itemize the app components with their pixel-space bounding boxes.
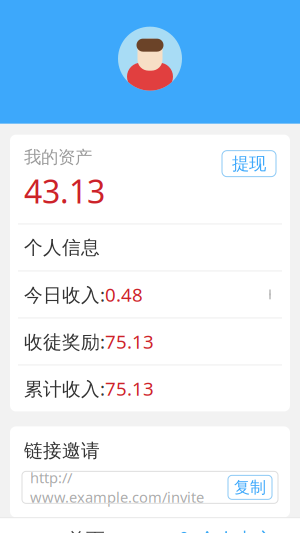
button[interactable]: 首页: [0, 518, 150, 533]
staticText: 0.48: [105, 282, 143, 307]
button[interactable]: 累计收入:: [10, 365, 290, 411]
staticText: 首页: [67, 528, 105, 533]
staticText: 个人中心: [198, 528, 274, 533]
button[interactable]: 个人中心: [150, 518, 300, 533]
staticText: http://www.example.com/invite: [30, 468, 204, 507]
staticText: 累计收入:: [24, 376, 105, 401]
staticText: 75.13: [105, 376, 154, 401]
staticText: 43.13: [24, 170, 105, 212]
staticText: 个人信息: [24, 236, 100, 259]
staticText: 链接邀请: [24, 439, 100, 462]
staticText: 75.13: [105, 329, 154, 354]
staticText: 复制: [234, 477, 266, 497]
staticText: 收徒奖励:: [24, 329, 105, 354]
button[interactable]: 复制: [228, 475, 272, 499]
button[interactable]: 提现: [222, 151, 276, 177]
staticText: 我的资产: [24, 147, 92, 168]
button[interactable]: 今日收入:: [10, 271, 290, 317]
staticText: 今日收入:: [24, 282, 105, 307]
staticText: 提现: [232, 153, 266, 174]
button[interactable]: 收徒奖励:: [10, 318, 290, 364]
button[interactable]: 个人信息: [10, 224, 290, 270]
